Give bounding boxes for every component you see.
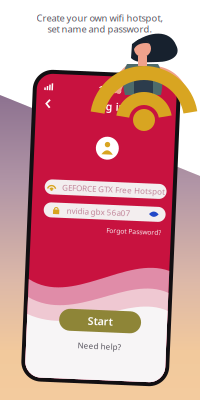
button[interactable]: Forgot Password? <box>106 226 161 234</box>
staticText: Log in <box>87 99 120 113</box>
staticText: 13.45 <box>92 83 115 95</box>
button[interactable]: Start <box>63 310 145 332</box>
staticText: Create your own wifi hotspot, <box>36 12 163 24</box>
staticText: nvidia gbx 56a07 <box>66 207 130 217</box>
staticText: Start <box>91 314 116 328</box>
staticText: set name and password. <box>47 23 152 35</box>
button[interactable]: GEFORCE GTX Free Hotspot <box>43 181 165 196</box>
staticText: Need help? <box>82 341 125 351</box>
staticText: Forgot Password? <box>106 226 161 234</box>
button[interactable]: Need help? <box>82 341 125 351</box>
button[interactable]: nvidia gbx 56a07 <box>43 204 165 219</box>
button[interactable]: Back <box>36 99 50 113</box>
staticText: GEFORCE GTX Free Hotspot <box>60 184 163 194</box>
